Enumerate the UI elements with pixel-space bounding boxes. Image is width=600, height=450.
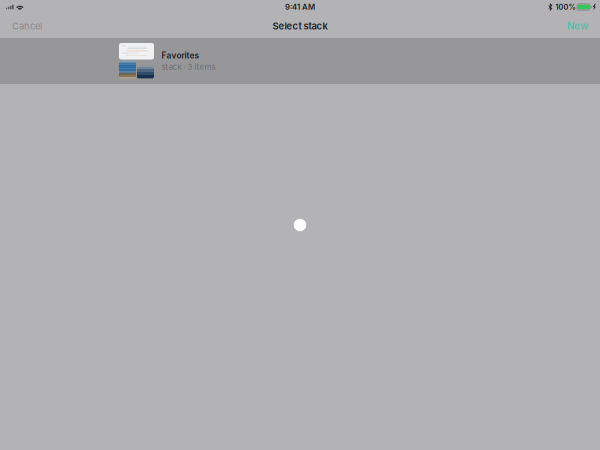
- staticText: 100%: [556, 3, 576, 11]
- staticText: Favorites: [161, 50, 199, 60]
- staticText: Cancel: [12, 20, 42, 32]
- button[interactable]: Favorites: [0, 38, 600, 84]
- staticText: Select stack: [272, 20, 327, 32]
- staticText: 9:41 AM: [285, 2, 315, 12]
- button[interactable]: New: [561, 15, 594, 37]
- button[interactable]: Cancel: [6, 15, 48, 37]
- staticText: New: [567, 20, 588, 32]
- staticText: stack · 3 items: [161, 62, 215, 72]
